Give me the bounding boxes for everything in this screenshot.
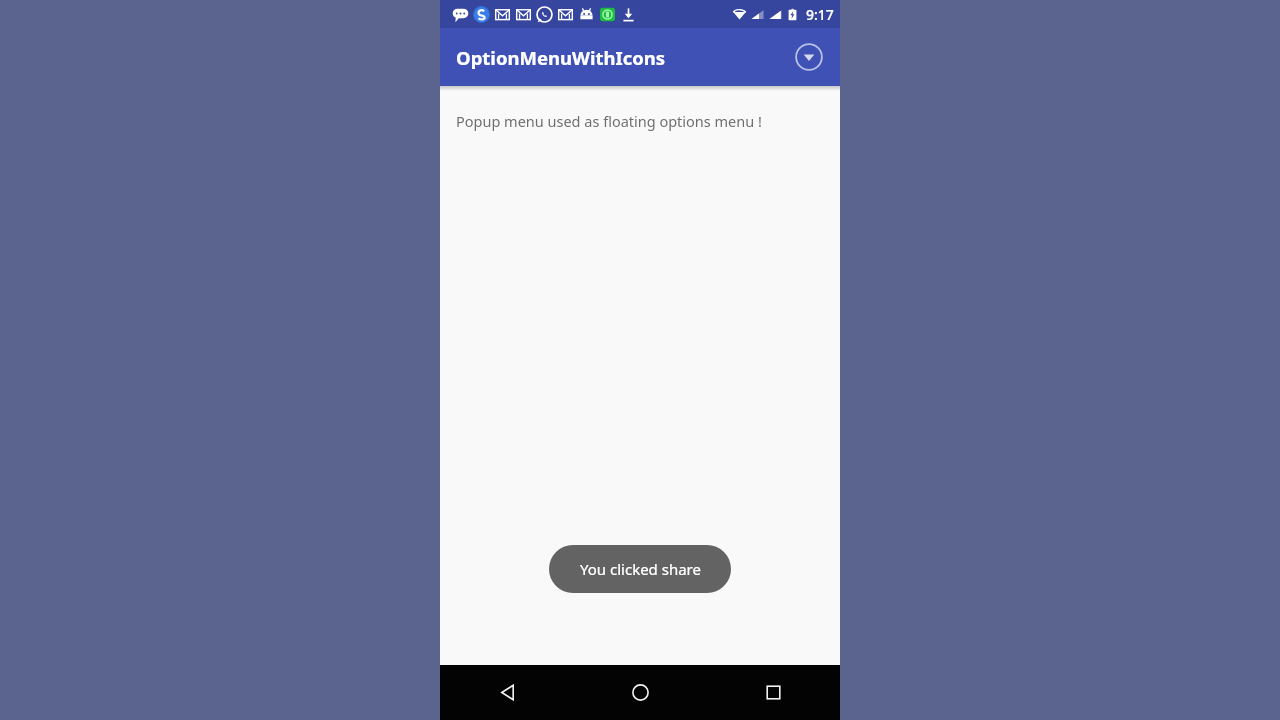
- staticText: You clicked share: [580, 559, 701, 579]
- button[interactable]: More options: [791, 39, 827, 75]
- staticText: 9:17: [806, 5, 834, 24]
- button[interactable]: Recent apps: [707, 665, 840, 720]
- staticText: OptionMenuWithIcons: [456, 45, 666, 70]
- staticText: Popup menu used as floating options menu…: [456, 111, 762, 131]
- button[interactable]: Back: [440, 665, 574, 720]
- button[interactable]: Home: [574, 665, 707, 720]
